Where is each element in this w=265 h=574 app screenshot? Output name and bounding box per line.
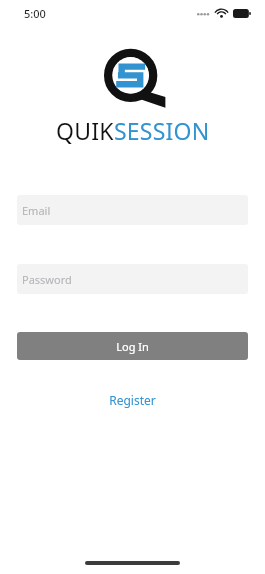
staticText: Register [109,392,156,408]
staticText: Log In [116,339,149,354]
other: QuikSession logo [104,49,166,109]
staticText: Password [22,272,72,287]
staticText: Email [22,203,51,218]
button[interactable]: Password [17,264,248,294]
staticText: SESSION [114,115,210,146]
button[interactable]: Register [99,388,166,412]
button[interactable]: Log In [17,332,248,360]
staticText: QUIK [56,115,114,146]
button[interactable]: Email [17,195,248,225]
staticText: 5:00 [24,6,46,21]
